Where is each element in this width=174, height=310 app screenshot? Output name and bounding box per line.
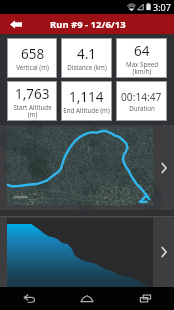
staticText: Distance (km) <box>67 63 107 71</box>
button[interactable]: 00:14:47 <box>116 81 167 121</box>
button[interactable]: Recent apps <box>116 287 174 310</box>
button[interactable]: 1,763 <box>7 81 57 121</box>
staticText: Start Altitude (m) <box>13 103 52 118</box>
staticText: Run #9 - 12/6/13 <box>50 18 126 31</box>
staticText: 64 <box>134 42 150 60</box>
staticText: End Altitude (m) <box>63 106 110 114</box>
other: Open details <box>161 247 167 257</box>
button[interactable]: 1,114 <box>61 81 112 121</box>
staticText: Duration <box>129 104 155 112</box>
staticText: 658 <box>21 45 45 63</box>
button[interactable]: Home <box>58 287 116 310</box>
staticText: 4.1 <box>77 45 97 63</box>
button[interactable]: 658 <box>7 38 57 78</box>
staticText: Max Speed (km/h) <box>126 60 158 75</box>
staticText: 3:07 <box>153 1 171 13</box>
button[interactable]: 4.1 <box>61 38 112 78</box>
staticText: Vertical (m) <box>16 63 49 71</box>
button[interactable]: Back <box>0 287 58 310</box>
button[interactable]: Back <box>0 14 31 34</box>
button[interactable]: Open details <box>0 125 174 210</box>
staticText: 1,114 <box>69 88 104 106</box>
button[interactable]: Open details <box>0 217 174 287</box>
staticText: 00:14:47 <box>121 90 162 104</box>
staticText: 1,763 <box>15 85 50 103</box>
other: Open details <box>161 163 167 173</box>
button[interactable]: 64 <box>116 38 167 78</box>
